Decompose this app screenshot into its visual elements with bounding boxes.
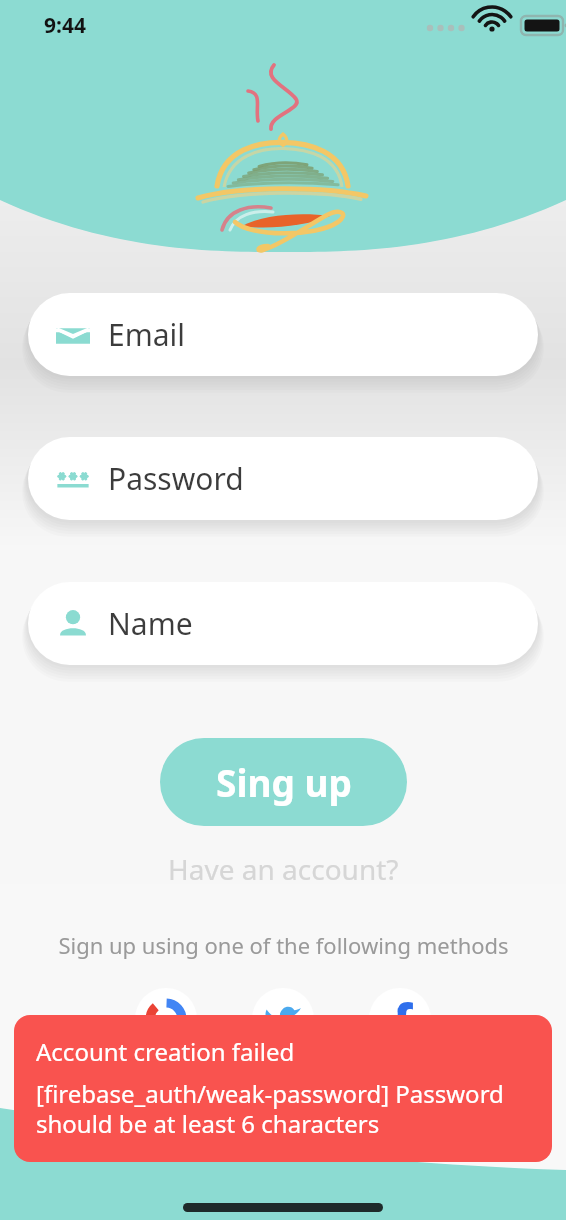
button[interactable]: Name bbox=[28, 582, 538, 665]
button[interactable]: Sign up with Facebook bbox=[369, 988, 431, 1050]
staticText: Sing up bbox=[216, 757, 352, 807]
staticText: Have an account? bbox=[168, 850, 399, 888]
staticText: 9:44 bbox=[44, 11, 86, 40]
button[interactable]: Account creation failed bbox=[14, 1015, 552, 1162]
button[interactable]: Sing up bbox=[160, 738, 407, 826]
button[interactable]: Sign up with Google bbox=[135, 988, 197, 1050]
staticText: Password bbox=[108, 458, 244, 499]
staticText: Back to login bbox=[183, 1092, 384, 1134]
staticText: Sign up using one of the following metho… bbox=[58, 930, 509, 960]
staticText: Account creation failed bbox=[36, 1035, 295, 1068]
button[interactable]: Sign up with Twitter bbox=[252, 988, 314, 1050]
staticText: Email bbox=[108, 314, 186, 355]
staticText: Name bbox=[108, 603, 193, 644]
button[interactable]: Password bbox=[28, 437, 538, 520]
staticText: [firebase_auth/weak-password] Password s… bbox=[36, 1077, 534, 1140]
button[interactable]: Email bbox=[28, 293, 538, 376]
button[interactable]: Have an account? bbox=[158, 846, 409, 892]
button[interactable]: Back to login bbox=[171, 1088, 396, 1138]
